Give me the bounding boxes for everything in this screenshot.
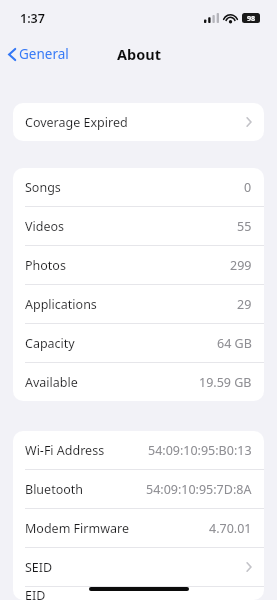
staticText: General <box>19 45 69 63</box>
button[interactable]: Songs <box>13 168 264 206</box>
staticText: Applications <box>25 296 97 313</box>
staticText: 299 <box>230 257 252 274</box>
staticText: Modem Firmware <box>25 520 129 537</box>
button[interactable]: Wi-Fi Address <box>13 431 264 469</box>
button[interactable]: Available <box>13 363 264 401</box>
staticText: 19.59 GB <box>199 374 252 391</box>
staticText: About <box>117 44 161 64</box>
staticText: 29 <box>237 296 252 313</box>
staticText: Coverage Expired <box>25 114 128 131</box>
staticText: EID <box>25 587 46 600</box>
staticText: 0 <box>244 179 252 196</box>
staticText: Bluetooth <box>25 481 84 498</box>
staticText: Wi-Fi Address <box>25 442 105 459</box>
staticText: Capacity <box>25 335 75 352</box>
staticText: 4.70.01 <box>209 520 252 537</box>
staticText: Photos <box>25 257 66 274</box>
staticText: 54:09:10:95:B0:13 <box>148 442 252 459</box>
staticText: Videos <box>25 218 65 235</box>
button[interactable]: Applications <box>13 285 264 323</box>
staticText: Available <box>25 374 78 391</box>
button[interactable]: Capacity <box>13 324 264 362</box>
button[interactable]: Coverage Expired <box>13 103 264 141</box>
staticText: 1:37 <box>20 10 45 27</box>
staticText: Songs <box>25 179 61 196</box>
staticText: 55 <box>237 218 252 235</box>
button[interactable]: Photos <box>13 246 264 284</box>
staticText: 98 <box>247 13 256 23</box>
staticText: SEID <box>25 559 53 576</box>
button[interactable]: EID <box>13 587 264 600</box>
button[interactable]: SEID <box>13 548 264 586</box>
staticText: 54:09:10:95:7D:8A <box>146 481 252 498</box>
button[interactable]: Modem Firmware <box>13 509 264 547</box>
button[interactable]: Videos <box>13 207 264 245</box>
staticText: 64 GB <box>217 335 252 352</box>
button[interactable]: General <box>0 40 77 68</box>
button[interactable]: Bluetooth <box>13 470 264 508</box>
